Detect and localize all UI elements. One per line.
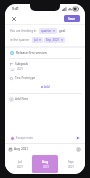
button[interactable]: Calendar options	[75, 146, 81, 152]
staticText: Subgoals	[15, 62, 29, 66]
button[interactable]: quarter	[39, 28, 57, 34]
button[interactable]: Add Note	[5, 94, 85, 104]
button[interactable]: Jul	[32, 37, 43, 43]
button[interactable]: Jul	[9, 155, 30, 173]
staticText: 9:41	[12, 6, 19, 11]
button[interactable]: Aug	[32, 155, 58, 173]
staticText: Release first version	[16, 51, 47, 55]
button[interactable]: Release first version	[5, 48, 85, 58]
staticText: Sep	[68, 160, 74, 164]
button[interactable]: Sep	[60, 155, 81, 173]
button[interactable]: Add attachment	[9, 135, 15, 141]
staticText: You are thinking in	[10, 29, 37, 33]
staticText: in the quarter	[10, 38, 30, 42]
staticText: Sep, 2021	[46, 38, 60, 42]
staticText: 2021	[43, 165, 49, 169]
staticText: Add Note	[15, 97, 29, 101]
button[interactable]: Sep, 2021	[44, 37, 65, 43]
button[interactable]: Add	[38, 84, 53, 90]
staticText: 2021	[17, 165, 23, 169]
staticText: Escape note	[16, 136, 33, 140]
staticText: 2021	[68, 165, 74, 169]
staticText: Aug 2021	[14, 147, 29, 151]
button[interactable]: Test Prototype	[5, 74, 85, 82]
staticText: Aug	[42, 160, 49, 164]
staticText: Save	[68, 17, 76, 21]
button[interactable]: Close	[10, 15, 18, 23]
staticText: 2021	[17, 67, 24, 71]
button[interactable]: Send	[74, 134, 81, 141]
staticText: Test Prototype	[15, 76, 36, 80]
staticText: Jul	[18, 160, 22, 164]
staticText: quarter	[41, 29, 52, 33]
staticText: Jul	[34, 38, 38, 42]
button[interactable]: Save	[64, 15, 80, 22]
staticText: Add	[44, 85, 50, 89]
staticText: All	[11, 68, 14, 71]
staticText: goal	[59, 29, 66, 33]
